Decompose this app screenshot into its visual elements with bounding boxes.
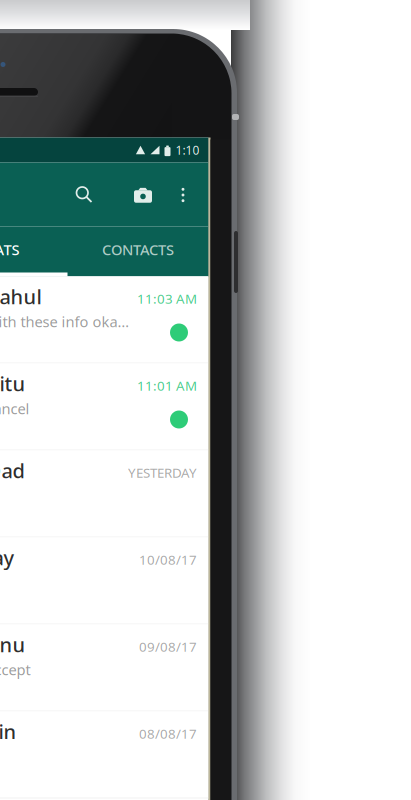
staticText: with these info okay… — [0, 312, 131, 331]
button[interactable]: CONTACTS — [67, 226, 208, 272]
button[interactable]: Jay — [0, 537, 208, 624]
staticText: accept — [0, 660, 30, 679]
staticText: 08/08/17 — [139, 725, 197, 742]
staticText: Rahul — [0, 283, 41, 310]
staticText: Jay — [0, 544, 14, 571]
button[interactable]: Ritu — [0, 363, 208, 450]
staticText: 1:10 — [175, 142, 199, 158]
button[interactable]: Rahul — [0, 276, 208, 363]
button[interactable]: Search — [62, 173, 106, 217]
staticText: cancel — [0, 399, 29, 418]
button[interactable]: More options — [165, 173, 201, 217]
staticText: YESTERDAY — [128, 464, 197, 481]
staticText: 11:01 AM — [137, 377, 197, 394]
button[interactable]: Dad — [0, 450, 208, 537]
staticText: 11:03 AM — [137, 290, 197, 307]
staticText: Anu — [0, 631, 25, 658]
staticText: CONTACTS — [102, 240, 174, 259]
staticText: CHATS — [0, 240, 19, 259]
staticText: Vin — [0, 718, 16, 745]
button[interactable]: Camera — [121, 173, 165, 217]
button[interactable]: CHATS — [0, 226, 67, 272]
staticText: Dad — [0, 457, 24, 484]
button[interactable]: Vin — [0, 711, 208, 798]
staticText: 10/08/17 — [139, 551, 197, 568]
staticText: 09/08/17 — [139, 638, 197, 655]
button[interactable]: Anu — [0, 624, 208, 711]
staticText: Ritu — [0, 370, 25, 397]
